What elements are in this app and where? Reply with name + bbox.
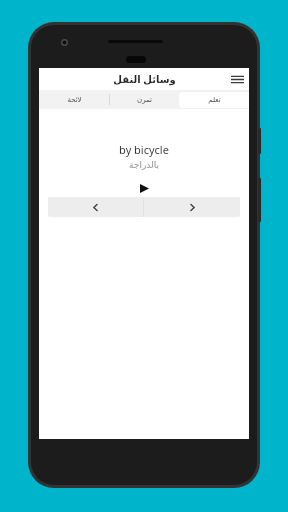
button[interactable]: Next (144, 197, 240, 217)
button[interactable]: Play audio (136, 180, 152, 196)
button[interactable]: تمرن (109, 90, 179, 109)
button[interactable]: Previous (48, 197, 143, 217)
staticText: تعلم (208, 96, 221, 104)
staticText: وسائل النقل (113, 72, 176, 86)
button[interactable]: Menu (228, 70, 246, 88)
button[interactable]: by bicycle (48, 132, 240, 197)
button[interactable]: تعلم (179, 92, 249, 108)
staticText: تمرن (137, 96, 152, 104)
staticText: بالدراجة (129, 160, 159, 170)
staticText: by bicycle (119, 142, 169, 157)
staticText: لائحة (67, 96, 82, 104)
button[interactable]: لائحة (39, 90, 109, 109)
